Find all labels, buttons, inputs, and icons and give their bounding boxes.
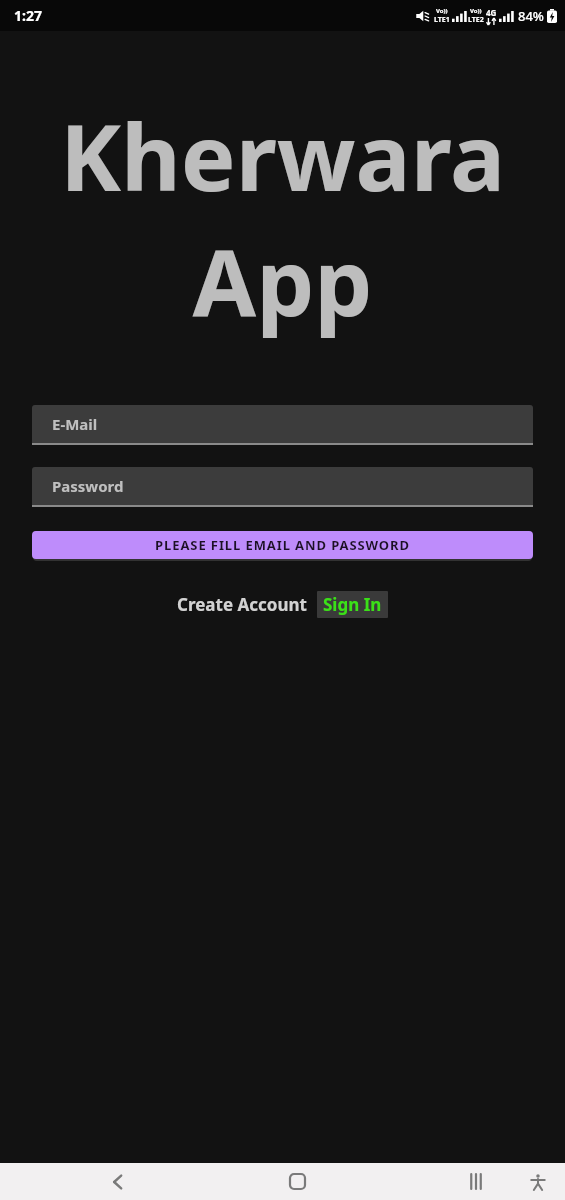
staticText: Sign In <box>323 593 382 616</box>
button[interactable]: Recent apps <box>453 1163 499 1200</box>
staticText: Kherwara <box>0 93 565 218</box>
button[interactable]: Back <box>95 1163 141 1200</box>
button[interactable]: Sign In <box>317 591 388 618</box>
button[interactable]: E-Mail <box>32 405 533 445</box>
button[interactable]: PLEASE FILL EMAIL AND PASSWORD <box>32 531 533 559</box>
staticText: Vo)) <box>436 7 448 15</box>
staticText: 1:27 <box>14 6 42 25</box>
staticText: LTE2 <box>468 15 484 25</box>
button[interactable]: Home <box>274 1163 320 1200</box>
staticText: LTE1 <box>434 15 450 25</box>
staticText: 4G <box>486 7 497 18</box>
staticText: E-Mail <box>52 414 98 434</box>
staticText: 84% <box>518 7 544 25</box>
button[interactable]: Create Account <box>177 593 307 616</box>
button[interactable]: Password <box>32 467 533 507</box>
button[interactable]: Accessibility <box>517 1163 559 1200</box>
staticText: Vo)) <box>470 7 482 15</box>
staticText: Password <box>52 476 124 496</box>
staticText: PLEASE FILL EMAIL AND PASSWORD <box>155 536 410 554</box>
staticText: Create Account <box>177 593 307 616</box>
staticText: App <box>0 218 565 343</box>
